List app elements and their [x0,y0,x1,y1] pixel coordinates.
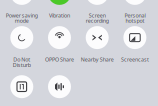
staticText: Screencast [121,56,149,63]
staticText: OPPO Share [45,56,74,63]
button[interactable] [123,26,146,49]
button[interactable] [123,0,146,5]
staticText: Personal [124,12,145,19]
button[interactable] [86,0,109,5]
button[interactable] [10,0,33,5]
button[interactable] [10,75,33,98]
button[interactable] [86,26,109,49]
button[interactable] [10,26,33,49]
button[interactable] [48,0,71,5]
staticText: Power saving [6,12,38,19]
staticText: hotspot [125,17,144,24]
staticText: Screen [89,12,106,19]
staticText: Do Not [13,56,30,63]
staticText: Vibration [49,12,70,19]
button[interactable] [48,26,71,49]
staticText: Disturb [13,61,31,68]
button[interactable] [48,75,71,98]
staticText: recording [86,17,109,24]
staticText: mode [15,17,29,24]
staticText: Nearby Share [81,56,114,63]
